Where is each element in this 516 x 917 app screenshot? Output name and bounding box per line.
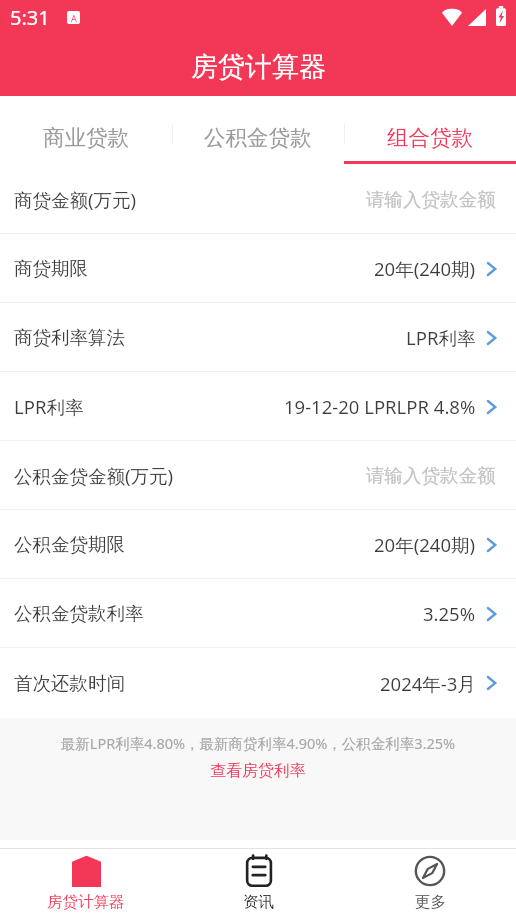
button[interactable]: 公积金贷款利率 <box>0 579 516 648</box>
button[interactable]: 组合贷款 <box>344 96 516 164</box>
button[interactable]: LPR利率 <box>0 372 516 441</box>
staticText: 20年(240期) <box>374 256 476 281</box>
staticText: 公积金贷金额(万元) <box>14 463 174 488</box>
staticText: LPR利率 <box>14 394 84 419</box>
staticText: 2024年-3月 <box>380 671 476 696</box>
staticText: 请输入贷款金额 <box>366 188 496 211</box>
staticText: 查看房贷利率 <box>210 761 306 781</box>
staticText: 房贷计算器 <box>47 892 125 912</box>
staticText: 商贷期限 <box>14 257 88 280</box>
staticText: 公积金贷期限 <box>14 533 125 556</box>
staticText: A <box>71 12 77 24</box>
staticText: 商贷金额(万元) <box>14 187 137 212</box>
button[interactable]: 更多 <box>344 849 516 917</box>
staticText: 请输入贷款金额 <box>366 464 496 487</box>
button[interactable]: 房贷计算器 <box>0 849 172 917</box>
button[interactable]: 查看房贷利率 <box>198 759 318 783</box>
button[interactable]: 公积金贷金额(万元) <box>0 441 516 510</box>
staticText: 5:31 <box>10 4 50 31</box>
staticText: 首次还款时间 <box>14 672 125 695</box>
staticText: 公积金贷款利率 <box>14 602 144 625</box>
button[interactable]: 资讯 <box>172 849 344 917</box>
staticText: 3.25% <box>423 601 476 626</box>
button[interactable]: 公积金贷款 <box>172 96 344 164</box>
button[interactable]: 首次还款时间 <box>0 648 516 718</box>
staticText: 19-12-20 LPRLPR 4.8% <box>284 394 476 419</box>
button[interactable]: 商贷利率算法 <box>0 303 516 372</box>
button[interactable]: 商贷期限 <box>0 234 516 303</box>
staticText: 公积金贷款 <box>204 124 312 151</box>
button[interactable]: 商业贷款 <box>0 96 172 164</box>
staticText: 20年(240期) <box>374 532 476 557</box>
staticText: LPR利率 <box>406 325 476 350</box>
staticText: 最新LPR利率4.80%，最新商贷利率4.90%，公积金利率3.25% <box>0 733 516 753</box>
staticText: 商业贷款 <box>43 124 129 151</box>
staticText: 商贷利率算法 <box>14 326 125 349</box>
staticText: 房贷计算器 <box>191 50 326 84</box>
staticText: 组合贷款 <box>387 124 473 151</box>
staticText: 资讯 <box>243 892 274 912</box>
staticText: 更多 <box>415 892 446 912</box>
button[interactable]: 商贷金额(万元) <box>0 165 516 234</box>
button[interactable]: 公积金贷期限 <box>0 510 516 579</box>
